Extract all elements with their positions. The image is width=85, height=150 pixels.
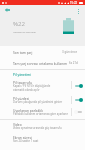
staticText: %22 bbox=[13, 19, 26, 27]
staticText: Pil tasarrufu bbox=[13, 80, 32, 84]
button[interactable]: Pil tasarrufu bbox=[0, 78, 85, 92]
staticText: 3 gün önce bbox=[62, 50, 78, 54]
staticText: Tam şarj sonrası ortalama kullanım bbox=[13, 61, 69, 65]
staticText: Yaklaşık 6s 30d kaldı bbox=[13, 30, 36, 33]
staticText: Kapalı / Pil %15'e düştüğünde otomatik o… bbox=[13, 84, 51, 91]
staticText: 15:22 bbox=[70, 1, 78, 5]
staticText: Durum çubuğunda pil yüzdesini göster bbox=[13, 100, 63, 104]
staticText: Pil yüzdesi bbox=[13, 96, 30, 100]
staticText: Uyarlanan parlaklık bbox=[13, 108, 43, 112]
button[interactable]: Son tam şarj bbox=[0, 47, 85, 57]
button[interactable]: Turn on bbox=[74, 108, 83, 115]
staticText: Video bbox=[13, 122, 22, 126]
staticText: Video oynatma sırasında güç tasarrufu bbox=[13, 126, 62, 130]
staticText: Ekran süresi bbox=[13, 135, 32, 139]
button[interactable]: Tam şarj sonrası ortalama kullanım bbox=[0, 58, 85, 68]
button[interactable]: Turn off bbox=[74, 96, 83, 103]
staticText: Son tam şarj bbox=[13, 50, 62, 54]
staticText: Parlaklık kullanım ortamınıza göre ayarl… bbox=[13, 112, 68, 116]
button[interactable]: Turn off bbox=[74, 82, 83, 89]
staticText: Pil yönetimi bbox=[13, 73, 31, 77]
button[interactable]: Back bbox=[1, 4, 13, 16]
button[interactable]: Video bbox=[0, 120, 85, 131]
button[interactable]: Uyarlanan parlaklık bbox=[0, 106, 85, 117]
button[interactable]: Ekran süresi bbox=[0, 133, 85, 144]
button[interactable]: Pil yüzdesi bbox=[0, 94, 85, 105]
staticText: Son 24 saatte 1 saat bbox=[13, 139, 39, 143]
staticText: 6s 21d bbox=[69, 61, 78, 65]
button[interactable]: More options bbox=[72, 5, 85, 18]
